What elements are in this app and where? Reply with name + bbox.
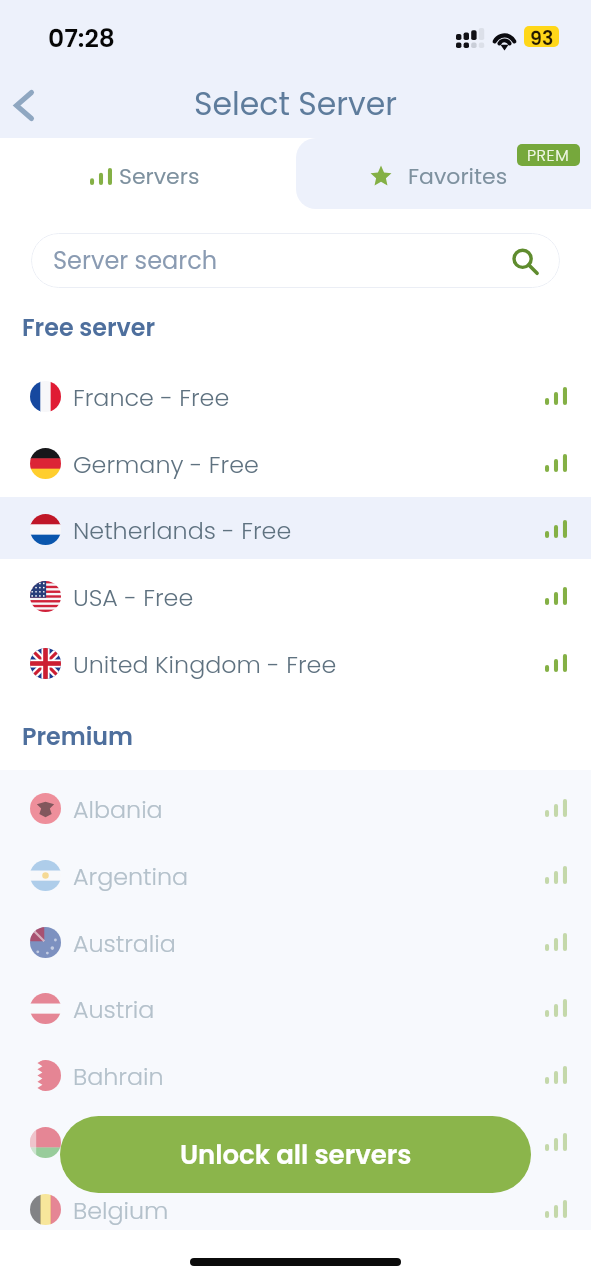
staticText: 93 <box>530 26 554 46</box>
staticText: Albania <box>73 793 163 826</box>
staticText: PREM <box>527 144 570 166</box>
staticText: Netherlands - Free <box>73 514 292 547</box>
button[interactable]: Netherlands - Free <box>0 496 591 562</box>
staticText: United Kingdom - Free <box>73 648 337 681</box>
staticText: Premium <box>22 720 133 753</box>
staticText: Favorites <box>408 161 508 192</box>
staticText: Select Server <box>194 82 398 126</box>
button[interactable]: Australia <box>0 909 591 975</box>
staticText: Austria <box>73 993 155 1026</box>
button[interactable]: Unlock all servers <box>60 1116 531 1193</box>
staticText: Argentina <box>73 860 189 893</box>
button[interactable]: Albania <box>0 775 591 841</box>
button[interactable]: Servers <box>0 138 296 209</box>
button[interactable]: USA - Free <box>0 563 591 629</box>
staticText: Free server <box>22 311 156 344</box>
staticText: Belgium <box>73 1194 169 1227</box>
button[interactable]: Argentina <box>0 842 591 908</box>
button[interactable]: Favorites <box>296 138 591 209</box>
staticText: Server search <box>53 244 218 278</box>
button[interactable]: Server search <box>31 233 560 288</box>
staticText: France - Free <box>73 381 230 414</box>
staticText: 07:28 <box>48 21 115 56</box>
staticText: Germany - Free <box>73 448 259 481</box>
button[interactable]: Germany - Free <box>0 430 591 496</box>
button[interactable]: Belgium <box>0 1176 591 1242</box>
button[interactable]: Back <box>0 82 46 128</box>
staticText: USA - Free <box>73 581 194 614</box>
button[interactable]: France - Free <box>0 363 591 429</box>
button[interactable]: United Kingdom - Free <box>0 630 591 696</box>
button[interactable]: Bahrain <box>0 1042 591 1108</box>
staticText: Bahrain <box>73 1060 164 1093</box>
staticText: Servers <box>119 161 200 192</box>
staticText: Australia <box>73 927 176 960</box>
staticText: Unlock all servers <box>180 1137 412 1173</box>
button[interactable]: Austria <box>0 975 591 1041</box>
button[interactable]: Belarus <box>0 1109 591 1175</box>
